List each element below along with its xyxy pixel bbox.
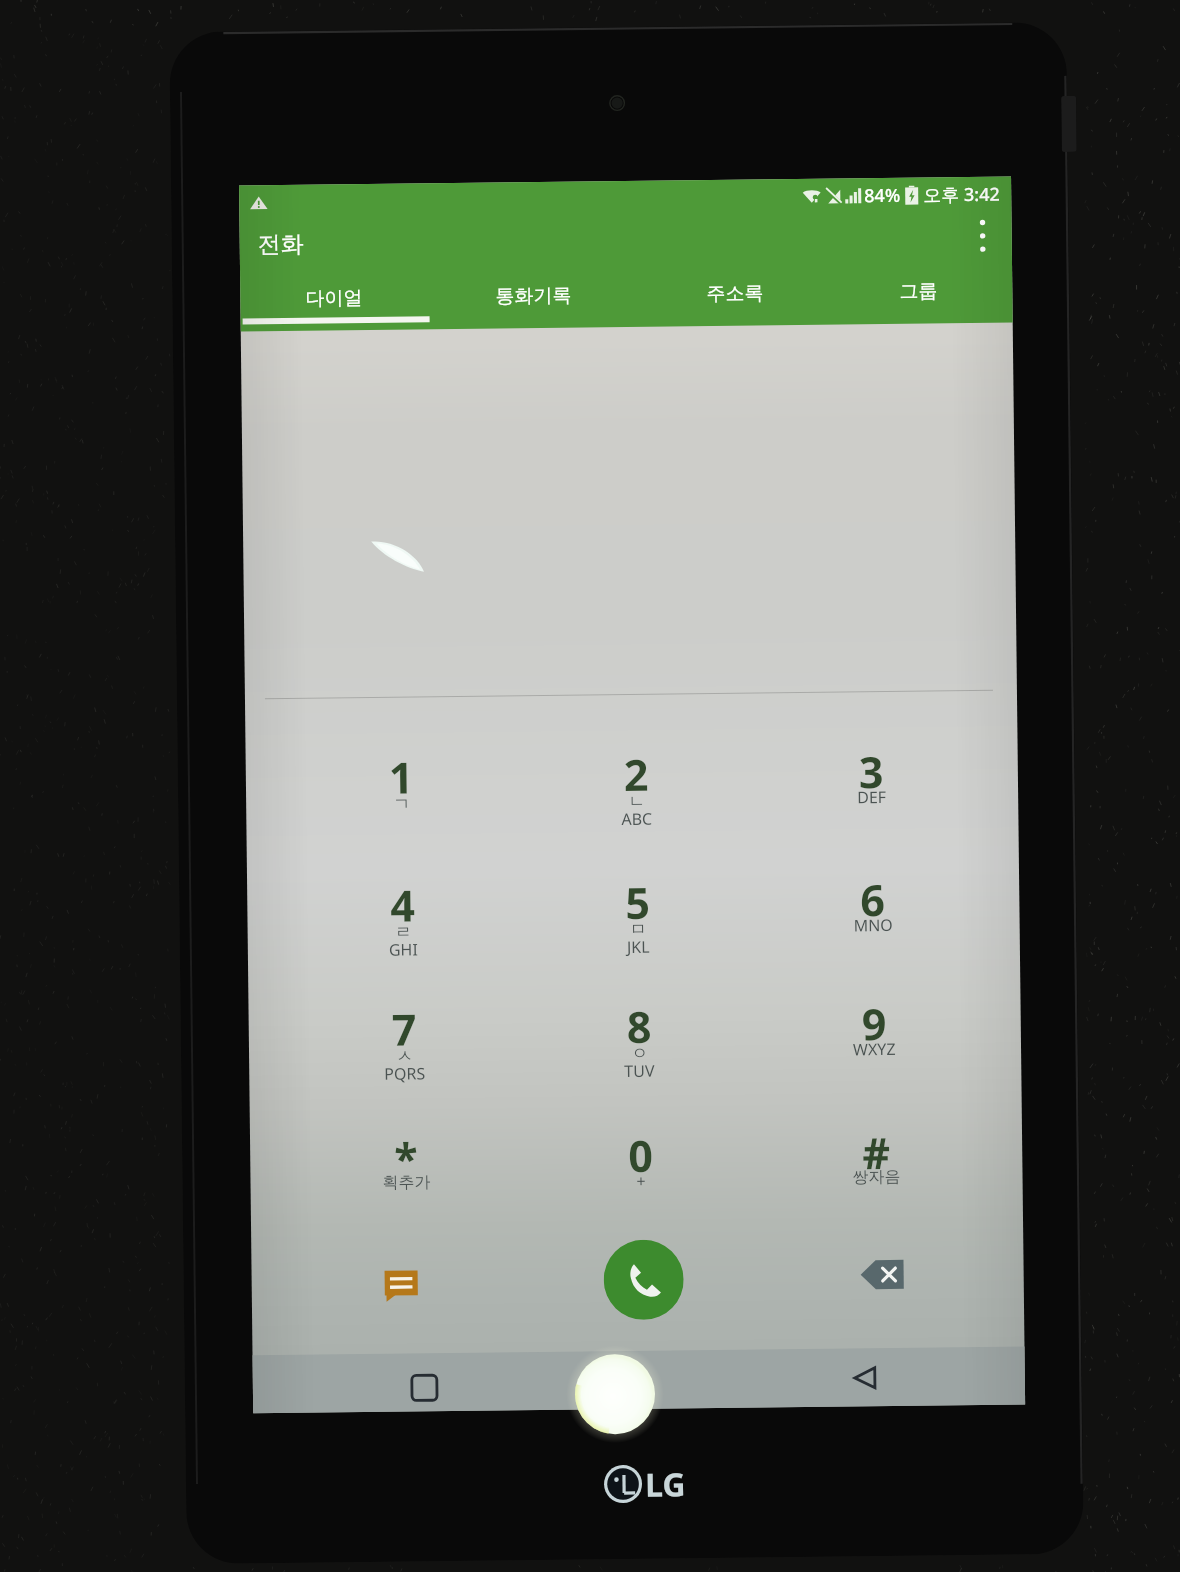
staticText: 8 (626, 997, 652, 1056)
staticText: 3 (858, 742, 884, 801)
staticText: ㄹ (394, 921, 412, 943)
staticText: # (862, 1123, 891, 1182)
button[interactable]: Recents (394, 1358, 454, 1417)
button[interactable]: More options (962, 216, 1003, 256)
button[interactable]: 7 (286, 998, 523, 1119)
button[interactable]: * (288, 1127, 524, 1248)
staticText: ㅅ (396, 1045, 413, 1067)
staticText: 다이얼 (305, 286, 362, 311)
staticText: 주소록 (706, 281, 763, 306)
button[interactable]: 9 (756, 993, 993, 1113)
button[interactable]: Back (834, 1348, 895, 1407)
button[interactable]: Backspace (853, 1246, 910, 1302)
staticText: TUV (624, 1060, 655, 1082)
staticText: 획추가 (382, 1172, 431, 1193)
staticText: + (636, 1170, 647, 1192)
button[interactable]: 다이얼 (237, 281, 430, 331)
staticText: JKL (627, 936, 650, 958)
staticText: 84% (864, 183, 900, 208)
staticText: 6 (860, 870, 886, 929)
button[interactable]: 5 (520, 871, 756, 992)
button[interactable]: 주소록 (638, 277, 831, 327)
staticText: 1 (388, 747, 414, 807)
button[interactable]: 8 (521, 995, 758, 1116)
button[interactable]: Home (601, 1354, 662, 1412)
button[interactable]: # (758, 1122, 994, 1242)
staticText: 그룹 (899, 279, 937, 304)
button[interactable]: Call (603, 1239, 684, 1320)
staticText: ㅁ (629, 919, 647, 940)
staticText: 통화기록 (495, 284, 571, 308)
staticText: 전화 (258, 230, 304, 259)
staticText: 쌍자음 (852, 1167, 901, 1187)
staticText: * (394, 1128, 419, 1188)
staticText: 0 (628, 1126, 654, 1185)
staticText: WXYZ (853, 1038, 896, 1060)
staticText: LG (645, 1462, 686, 1507)
button[interactable]: 3 (753, 741, 990, 861)
staticText: 2 (623, 745, 649, 804)
staticText: 오후 3:42 (923, 182, 1000, 207)
button[interactable]: 그룹 (822, 274, 1015, 325)
staticText: ABC (621, 808, 653, 830)
button[interactable]: 1 (284, 746, 520, 867)
button[interactable]: 4 (285, 874, 521, 995)
button[interactable]: 6 (755, 869, 991, 989)
staticText: ㄴ (628, 791, 645, 812)
button[interactable]: Message (372, 1257, 429, 1314)
button[interactable]: 통화기록 (437, 279, 630, 329)
staticText: ㅇ (631, 1043, 648, 1064)
staticText: DEF (857, 786, 886, 808)
staticText: 5 (625, 873, 651, 932)
button[interactable]: 0 (523, 1124, 759, 1245)
staticText: PQRS (384, 1062, 425, 1085)
staticText: ㄱ (393, 793, 410, 815)
staticText: MNO (853, 914, 894, 936)
button[interactable]: 2 (518, 743, 755, 864)
staticText: 4 (390, 875, 416, 935)
staticText: 9 (861, 994, 887, 1053)
staticText: GHI (389, 938, 418, 961)
staticText: 7 (391, 999, 417, 1059)
